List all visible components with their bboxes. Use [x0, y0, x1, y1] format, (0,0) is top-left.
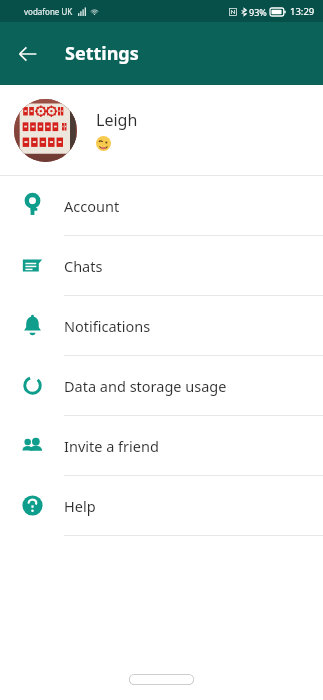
button[interactable]: Invite a friend: [0, 416, 323, 475]
staticText: Settings: [65, 41, 139, 66]
staticText: Account: [64, 196, 120, 216]
staticText: 93%: [249, 6, 267, 18]
staticText: 13:29: [290, 5, 315, 18]
staticText: Data and storage usage: [64, 376, 227, 396]
button[interactable]: Data and storage usage: [0, 356, 323, 415]
staticText: Help: [64, 496, 96, 516]
staticText: Chats: [64, 256, 103, 276]
staticText: Leigh: [96, 109, 138, 131]
staticText: Notifications: [64, 316, 151, 336]
staticText: Invite a friend: [64, 436, 159, 456]
button[interactable]: Help: [0, 476, 323, 535]
button[interactable]: Chats: [0, 236, 323, 295]
button[interactable]: Account: [0, 176, 323, 235]
button[interactable]: Home gesture: [129, 674, 194, 685]
button[interactable]: Back: [8, 34, 48, 74]
button[interactable]: Leigh: [0, 85, 323, 175]
staticText: vodafone UK: [24, 6, 73, 17]
button[interactable]: Notifications: [0, 296, 323, 355]
